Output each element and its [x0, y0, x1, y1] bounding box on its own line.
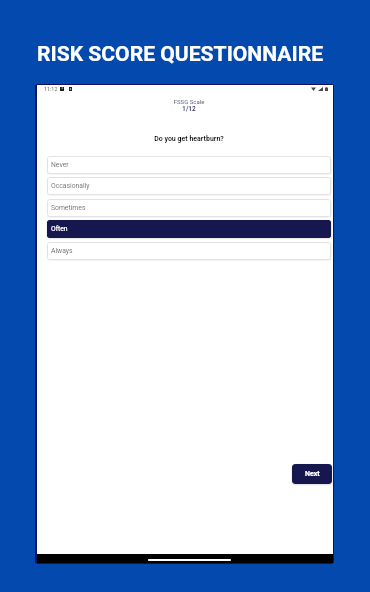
button[interactable]: Always: [47, 242, 331, 260]
staticText: Do you get heartburn?: [45, 135, 333, 143]
other: Signal: [318, 87, 323, 91]
staticText: FSSG Scale: [45, 98, 333, 105]
other: Battery: [325, 87, 328, 91]
button[interactable]: Sometimes: [47, 199, 331, 217]
staticText: Often: [51, 225, 68, 233]
button[interactable]: Often: [47, 220, 331, 238]
staticText: RISK SCORE QUESTIONNAIRE: [37, 41, 324, 66]
staticText: Next: [305, 470, 320, 478]
staticText: 1/12: [45, 105, 333, 113]
button[interactable]: Never: [47, 156, 331, 174]
staticText: 11:12: [44, 86, 58, 92]
staticText: Never: [51, 161, 69, 169]
staticText: Occasionally: [51, 182, 90, 190]
button[interactable]: Occasionally: [47, 177, 331, 195]
button[interactable]: Next: [292, 464, 332, 484]
staticText: Always: [51, 247, 73, 255]
other: Wi-Fi: [311, 87, 316, 91]
staticText: Sometimes: [51, 204, 86, 212]
